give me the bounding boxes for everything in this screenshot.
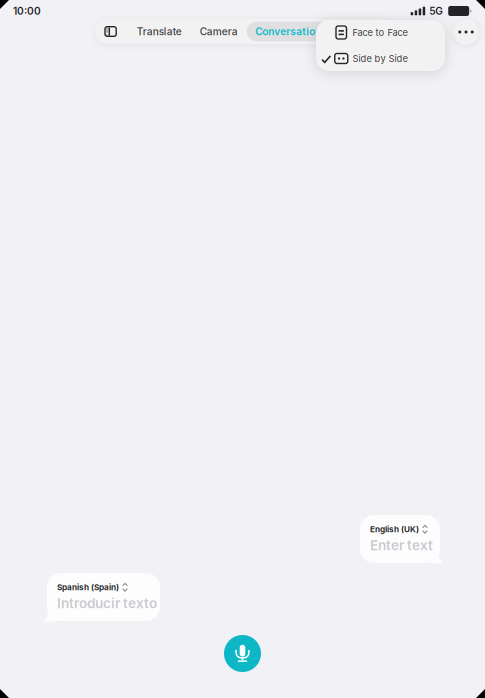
button[interactable]: English (UK) [360,515,440,563]
staticText: Face to Face [352,27,407,38]
button[interactable]: Show Sidebar [95,19,128,44]
staticText: English (UK) [370,524,419,534]
button[interactable]: Conversation [247,19,330,44]
staticText: 5G [429,5,443,17]
button[interactable]: Translate [128,19,191,44]
button[interactable]: Face to Face [316,20,445,45]
button[interactable]: Spanish (Spain) [47,573,160,621]
staticText: Translate [137,25,182,38]
button[interactable]: Camera [191,19,247,44]
button[interactable]: Side by Side [316,46,445,71]
button[interactable]: More options [453,19,479,45]
staticText: Introducir texto [57,595,157,612]
button[interactable]: Start conversation [224,635,261,672]
staticText: Camera [200,25,238,38]
staticText: Spanish (Spain) [57,582,119,592]
staticText: Conversation [255,25,321,38]
staticText: 10:00 [13,5,41,17]
staticText: Enter text [370,537,433,554]
staticText: Side by Side [352,53,407,64]
